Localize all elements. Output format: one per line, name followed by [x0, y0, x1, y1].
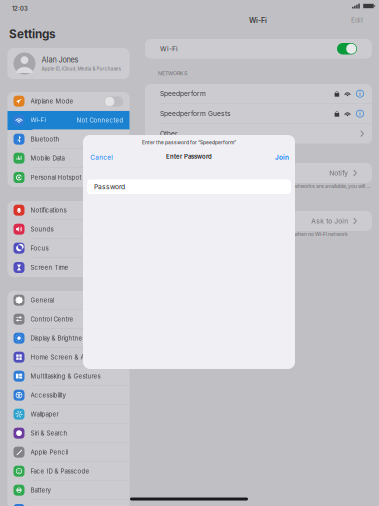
staticText: Enter the password for “Speedperform” — [142, 139, 236, 145]
staticText: Apple Pencil — [30, 448, 67, 456]
button[interactable]: Airplane Mode — [7, 92, 129, 111]
staticText: Other — [160, 130, 178, 138]
staticText: Alan Jones — [41, 55, 78, 64]
button[interactable]: Siri & Search — [7, 424, 129, 443]
staticText: Mobile Data — [30, 154, 64, 162]
staticText: Password — [94, 183, 125, 191]
button[interactable]: Join — [271, 150, 293, 164]
button[interactable]: Password — [87, 179, 291, 194]
staticText: Sounds — [30, 225, 53, 233]
button[interactable]: Edit — [347, 14, 367, 26]
staticText: Cancel — [90, 153, 113, 161]
button[interactable]: Wi-Fi — [7, 111, 129, 130]
button[interactable]: Speedperform — [145, 84, 372, 104]
button[interactable]: Wi-Fi — [337, 43, 357, 54]
staticText: NETWORKS — [158, 70, 187, 76]
button[interactable]: Ask to Join Networks — [145, 211, 372, 231]
button[interactable]: Display & Brightness — [7, 329, 129, 348]
button[interactable]: Accessibility — [7, 386, 129, 405]
button[interactable]: Personal Hotspot — [7, 168, 129, 187]
staticText: Wi-Fi — [30, 116, 45, 124]
button[interactable]: Home Screen & App Library — [7, 348, 129, 367]
staticText: Edit — [351, 16, 363, 24]
button[interactable]: General — [7, 291, 129, 310]
staticText: Notify — [329, 169, 348, 177]
staticText: Face ID & Passcode — [30, 467, 89, 475]
staticText: Settings — [9, 27, 56, 41]
staticText: Wi-Fi — [160, 45, 178, 53]
button[interactable]: Focus — [7, 239, 129, 258]
button[interactable]: Screen Time — [7, 258, 129, 277]
staticText: Accessibility — [30, 391, 65, 399]
staticText: Apple ID, iCloud, Media & Purchases — [41, 66, 120, 71]
button[interactable]: Wallpaper — [7, 405, 129, 424]
staticText: Focus — [30, 244, 48, 252]
button[interactable]: Speedperform Guests — [145, 104, 372, 124]
staticText: Screen Time — [30, 264, 68, 271]
button[interactable]: Cancel — [86, 150, 117, 164]
staticText: Speedperform — [160, 90, 206, 98]
staticText: Airplane Mode — [30, 97, 73, 105]
button[interactable]: Battery — [7, 481, 129, 500]
staticText: Allow this device to automatically join … — [158, 231, 348, 237]
button[interactable]: Apple Pencil — [7, 443, 129, 462]
button[interactable]: Control Centre — [7, 310, 129, 329]
staticText: Known networks will be joined automatica… — [158, 183, 370, 189]
staticText: Bluetooth — [30, 135, 59, 143]
button[interactable]: Face ID & Passcode — [7, 462, 129, 481]
staticText: Not Connected — [76, 116, 123, 124]
staticText: Home Screen & App Library — [30, 353, 112, 361]
staticText: 12:03 — [12, 5, 28, 12]
staticText: Ask to Join — [311, 217, 348, 225]
button[interactable]: Sounds — [7, 220, 129, 239]
staticText: Notifications — [30, 206, 66, 214]
staticText: Wi-Fi — [249, 16, 267, 25]
staticText: Siri & Search — [30, 429, 67, 437]
staticText: Control Centre — [30, 315, 73, 323]
button[interactable]: Bluetooth — [7, 130, 129, 149]
button[interactable]: Multitasking & Gestures — [7, 367, 129, 386]
staticText: Personal Hotspot — [30, 174, 81, 181]
staticText: Speedperform Guests — [160, 110, 231, 118]
staticText: Enter Password — [166, 153, 212, 160]
staticText: General — [30, 296, 53, 304]
staticText: Battery — [30, 486, 50, 494]
button[interactable]: Alan Jones — [7, 48, 129, 79]
button[interactable]: Notifications — [7, 201, 129, 220]
staticText: Wallpaper — [30, 410, 58, 418]
staticText: Join — [275, 153, 289, 161]
button[interactable]: Other — [145, 124, 372, 144]
button[interactable]: Privacy & Security — [7, 500, 129, 506]
button[interactable]: Auto-Join Hotspot — [145, 163, 372, 183]
button[interactable]: Mobile Data — [7, 149, 129, 168]
staticText: Display & Brightness — [30, 334, 88, 342]
staticText: Multitasking & Gestures — [30, 372, 100, 380]
